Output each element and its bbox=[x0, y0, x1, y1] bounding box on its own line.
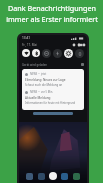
button[interactable]: NEWS • jetzt bbox=[22, 69, 84, 110]
staticText: 13:41 bbox=[22, 36, 31, 40]
button[interactable]: Messages bbox=[49, 172, 57, 180]
button[interactable]: Browser bbox=[26, 173, 33, 180]
staticText: Dank Benachrichtigungen bbox=[8, 3, 96, 13]
button[interactable]: Quick setting bbox=[64, 49, 73, 58]
staticText: NEWS • jetzt bbox=[30, 72, 47, 76]
staticText: Aktuelle Meldung bbox=[25, 96, 51, 100]
button[interactable]: Quick setting bbox=[53, 49, 62, 58]
button[interactable]: Quick setting bbox=[32, 49, 40, 57]
staticText: Fr., 17. Mai bbox=[22, 43, 37, 47]
staticText: NEWS • vor 5 Min. bbox=[30, 90, 54, 94]
staticText: immer als Erster informiert bbox=[6, 14, 98, 24]
button[interactable] bbox=[33, 112, 73, 115]
button[interactable]: Quick setting bbox=[75, 49, 84, 58]
staticText: Informationen für heute mit Hintergrund bbox=[25, 101, 76, 105]
button[interactable]: Quick setting bbox=[42, 49, 51, 58]
staticText: Gerät wird geladen bbox=[22, 63, 48, 67]
button[interactable]: Camera bbox=[38, 173, 45, 180]
button[interactable]: Phone bbox=[61, 173, 68, 180]
staticText: Schaut euch die Meldung an bbox=[25, 83, 63, 87]
button[interactable]: Quick setting bbox=[22, 49, 30, 57]
button[interactable]: Apps bbox=[73, 173, 80, 180]
staticText: Eilmeldung: Neues zur Lage bbox=[25, 78, 66, 82]
